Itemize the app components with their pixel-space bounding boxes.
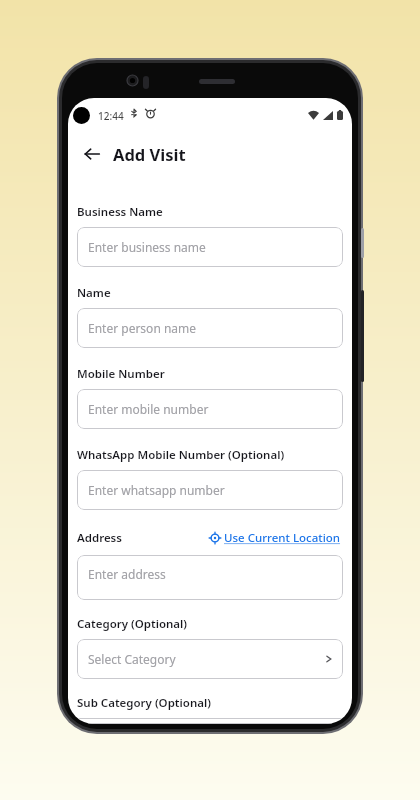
staticText: Name <box>77 285 111 301</box>
button[interactable]: Back <box>77 139 107 169</box>
button[interactable]: Enter mobile number <box>77 389 343 429</box>
staticText: Enter business name <box>88 239 206 255</box>
button[interactable]: Enter whatsapp number <box>77 470 343 510</box>
staticText: Sub Category (Optional) <box>77 695 211 711</box>
button[interactable] <box>77 718 343 724</box>
staticText: Mobile Number <box>77 366 165 382</box>
staticText: Enter address <box>88 566 166 582</box>
staticText: Add Visit <box>113 143 186 165</box>
staticText: Enter whatsapp number <box>88 482 225 498</box>
button[interactable]: Select Category <box>77 639 343 679</box>
staticText: Address <box>77 530 122 546</box>
staticText: Select Category <box>88 651 176 667</box>
staticText: Use Current Location <box>224 530 341 546</box>
button[interactable]: Enter address <box>77 555 343 600</box>
staticText: WhatsApp Mobile Number (Optional) <box>77 447 285 463</box>
staticText: Enter mobile number <box>88 401 209 417</box>
button[interactable]: Use Current Location <box>207 528 343 548</box>
button[interactable]: Enter person name <box>77 308 343 348</box>
staticText: Category (Optional) <box>77 616 188 632</box>
staticText: Business Name <box>77 204 163 220</box>
staticText: Enter person name <box>88 320 197 336</box>
staticText: 12:44 <box>98 109 124 123</box>
button[interactable]: Enter business name <box>77 227 343 267</box>
other: Power button <box>361 290 364 382</box>
other: Volume button <box>361 228 364 258</box>
